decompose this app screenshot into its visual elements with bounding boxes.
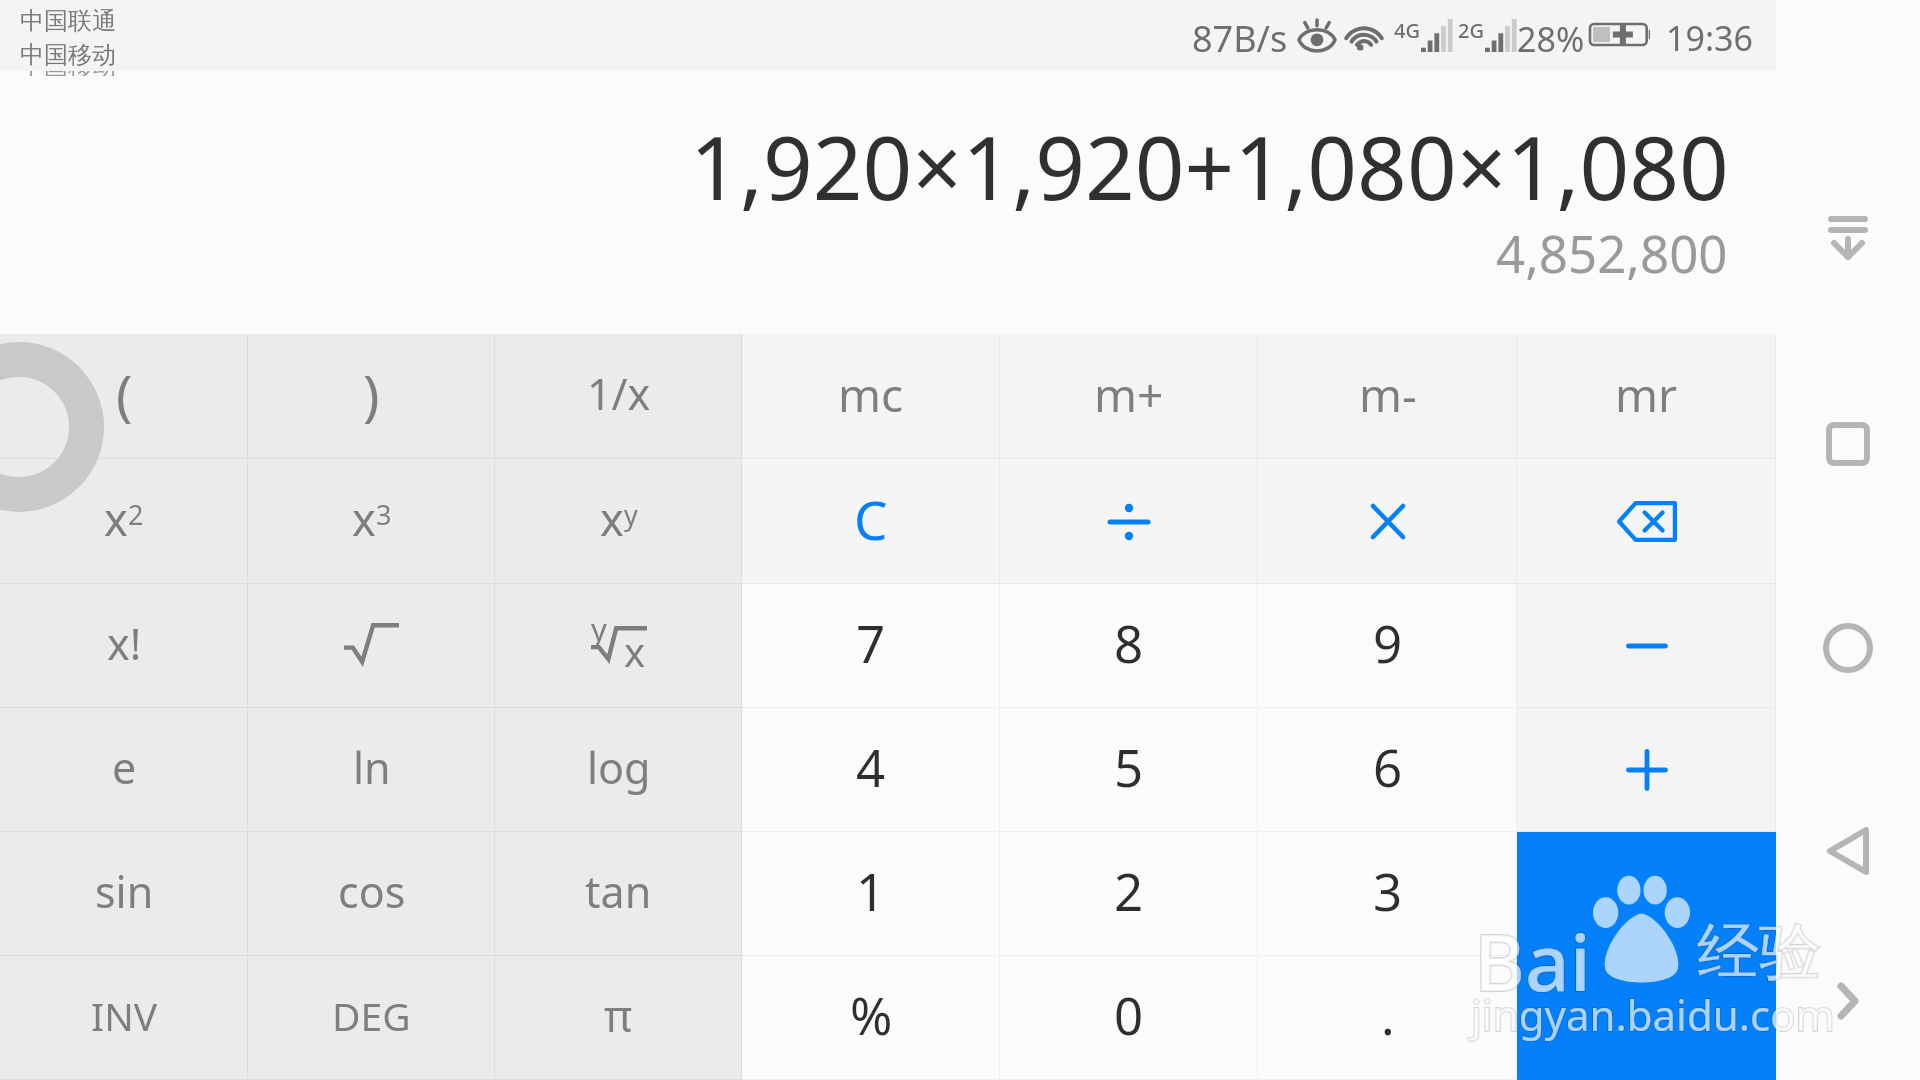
staticText: Bai [1474, 908, 1591, 1014]
button[interactable] [248, 584, 495, 708]
staticText: 28% [1517, 16, 1585, 62]
button[interactable]: ln [248, 708, 495, 832]
button[interactable]: π [495, 956, 742, 1080]
staticText: x [352, 488, 376, 549]
button[interactable]: 1 [742, 832, 1000, 956]
staticText: y [591, 608, 607, 650]
staticText: m+ [1094, 363, 1164, 426]
button[interactable]: 8 [1000, 584, 1258, 708]
button[interactable]: m+ [1000, 334, 1258, 459]
button[interactable]: Recent apps [1776, 384, 1920, 504]
staticText: sin [95, 862, 154, 921]
staticText: π [604, 986, 633, 1045]
button[interactable]: . [1258, 956, 1517, 1080]
button[interactable]: Plus [1517, 708, 1776, 832]
button[interactable]: % [742, 956, 1000, 1080]
staticText: jingyan.baidu.com [1471, 986, 1835, 1043]
staticText: 中国移动 [20, 40, 116, 70]
staticText: ln [353, 738, 391, 797]
button[interactable]: mr [1517, 334, 1776, 459]
staticText: 1 [856, 856, 886, 925]
button[interactable]: Equals [1517, 832, 1776, 956]
staticText: 8 [1114, 608, 1144, 677]
button[interactable]: 0 [1000, 956, 1258, 1080]
button[interactable]: ) [248, 334, 495, 459]
staticText: 3 [376, 496, 392, 533]
button[interactable]: Hide navigation bar [1776, 179, 1920, 299]
button[interactable]: More [1776, 941, 1920, 1061]
button[interactable]: m- [1258, 334, 1517, 459]
button[interactable]: 5 [1000, 708, 1258, 832]
staticText: 中国移动 [20, 71, 115, 76]
staticText: m- [1359, 363, 1417, 426]
staticText: 2G [1458, 17, 1484, 44]
button[interactable]: 3 [1258, 832, 1517, 956]
staticText: cos [338, 862, 406, 921]
button[interactable]: 9 [1258, 584, 1517, 708]
button[interactable]: tan [495, 832, 742, 956]
button[interactable]: C [742, 459, 1000, 584]
staticText: 中国联通 [20, 6, 116, 36]
staticText: 6 [1373, 732, 1403, 801]
button[interactable]: 6 [1258, 708, 1517, 832]
staticText: 4,852,800 [1496, 218, 1728, 287]
staticText: 4G [1394, 17, 1420, 44]
staticText: ( [116, 356, 133, 431]
staticText: 1,920×1,920+1,080×1,080 [690, 107, 1729, 225]
button[interactable]: 2 [1000, 832, 1258, 956]
staticText: C [854, 483, 888, 555]
button[interactable]: cos [248, 832, 495, 956]
staticText: 0 [1114, 980, 1144, 1049]
button[interactable]: x! [0, 584, 248, 708]
staticText: 经验 [1697, 913, 1821, 991]
staticText: Bai [1474, 908, 1591, 1014]
staticText: 2 [128, 496, 144, 533]
button[interactable]: Home [1776, 588, 1920, 708]
staticText: % [850, 980, 893, 1049]
button[interactable]: Divide [1000, 459, 1258, 584]
button[interactable]: mc [742, 334, 1000, 459]
button[interactable]: y [495, 584, 742, 708]
staticText: INV [91, 989, 158, 1042]
button[interactable]: Multiply [1258, 459, 1517, 584]
staticText: x [104, 488, 128, 549]
staticText: DEG [332, 989, 411, 1042]
staticText: 19:36 [1666, 15, 1753, 61]
staticText: . [1381, 980, 1395, 1049]
button[interactable]: x [495, 459, 742, 584]
button[interactable]: 7 [742, 584, 1000, 708]
staticText: x [600, 488, 624, 549]
button[interactable]: sin [0, 832, 248, 956]
staticText: ) [363, 356, 380, 431]
button[interactable]: Back [1776, 791, 1920, 911]
button[interactable]: INV [0, 956, 248, 1080]
staticText: y [624, 496, 638, 533]
staticText: 3 [1373, 856, 1403, 925]
staticText: 9 [1373, 608, 1403, 677]
button[interactable]: 4 [742, 708, 1000, 832]
staticText: 87B/s [1192, 14, 1288, 63]
staticText: mc [838, 363, 904, 426]
button[interactable]: ( [0, 334, 248, 459]
staticText: 2 [1114, 856, 1144, 925]
button[interactable]: 1/x [495, 334, 742, 459]
staticText: 5 [1114, 732, 1144, 801]
button[interactable]: Backspace [1517, 459, 1776, 584]
button[interactable]: log [495, 708, 742, 832]
staticText: mr [1615, 363, 1678, 426]
staticText: x! [107, 614, 142, 673]
button[interactable]: Equals [1517, 956, 1776, 1080]
button[interactable]: x [248, 459, 495, 584]
staticText: e [112, 738, 137, 797]
button[interactable]: DEG [248, 956, 495, 1080]
staticText: 1/x [587, 364, 651, 423]
staticText: 经验 [1697, 913, 1821, 991]
staticText: 4 [856, 732, 886, 801]
button[interactable]: Minus [1517, 584, 1776, 708]
staticText: tan [585, 862, 652, 921]
staticText: 7 [856, 608, 886, 677]
button[interactable]: x [0, 459, 248, 584]
staticText: log [587, 738, 651, 797]
button[interactable]: e [0, 708, 248, 832]
staticText: x [624, 624, 646, 667]
